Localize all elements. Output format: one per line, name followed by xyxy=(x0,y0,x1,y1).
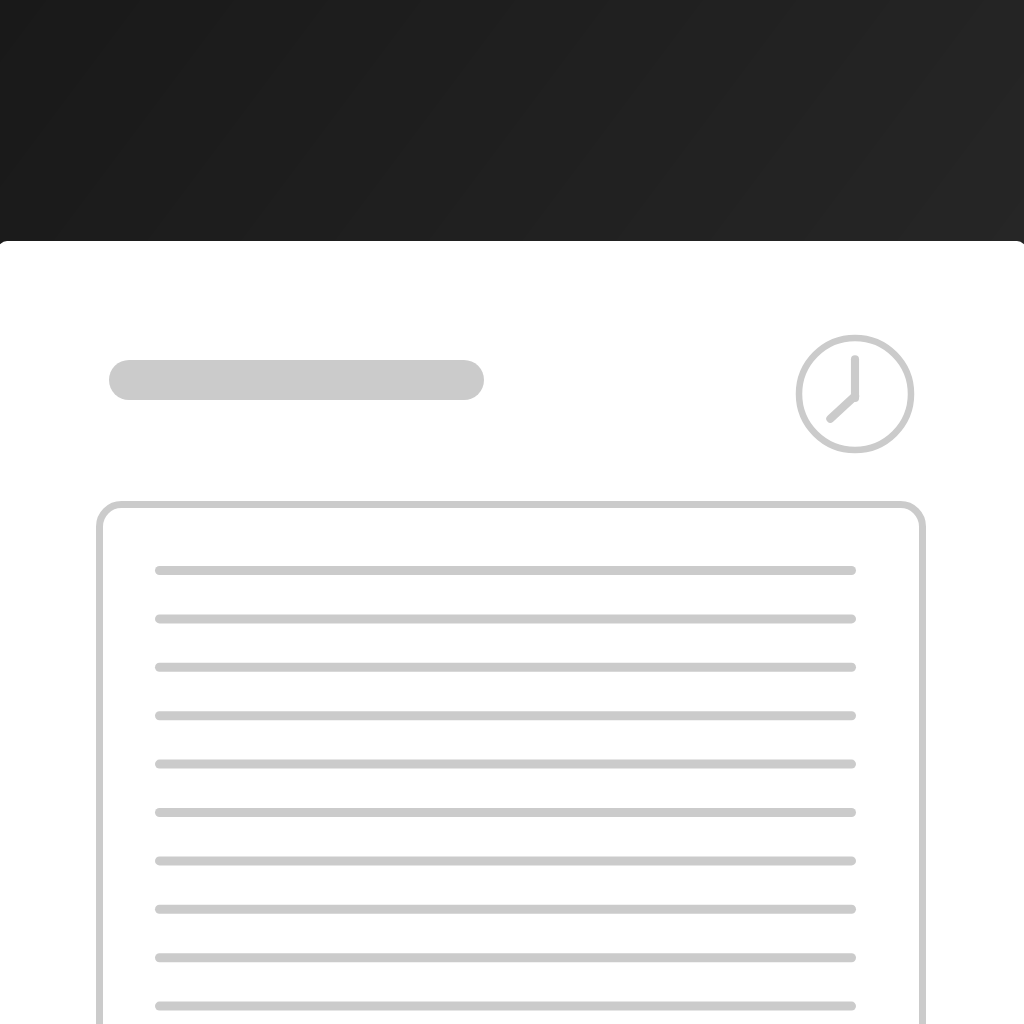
button[interactable]: Loading content placeholder xyxy=(0,0,1024,1024)
